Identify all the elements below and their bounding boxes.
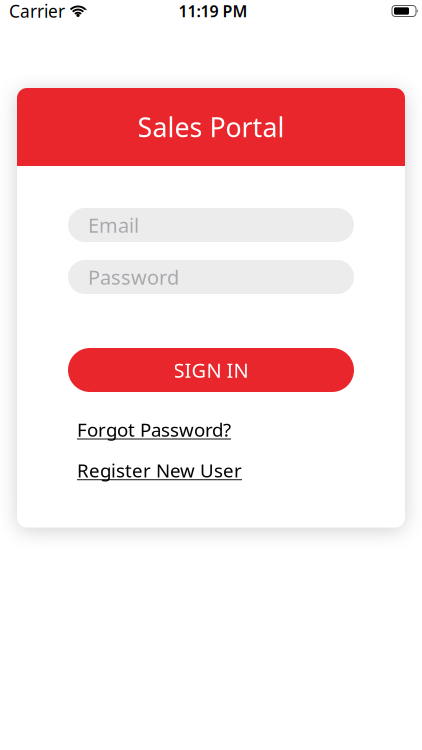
staticText: Carrier xyxy=(9,0,65,22)
staticText: Password xyxy=(88,264,179,290)
textField[interactable]: Email xyxy=(88,212,354,238)
button[interactable]: Forgot Password? xyxy=(77,417,231,442)
staticText: Email xyxy=(88,212,139,238)
button[interactable]: SIGN IN xyxy=(68,348,354,392)
staticText: Password xyxy=(88,264,179,290)
textField[interactable]: Password xyxy=(88,264,354,290)
staticText: Sales Portal xyxy=(137,109,284,145)
button[interactable]: Register New User xyxy=(77,458,242,483)
staticText: Register New User xyxy=(77,458,242,483)
staticText: Forgot Password? xyxy=(77,417,231,442)
staticText: 11:19 PM xyxy=(178,0,247,22)
staticText: Email xyxy=(88,212,139,238)
staticText: SIGN IN xyxy=(173,357,248,383)
